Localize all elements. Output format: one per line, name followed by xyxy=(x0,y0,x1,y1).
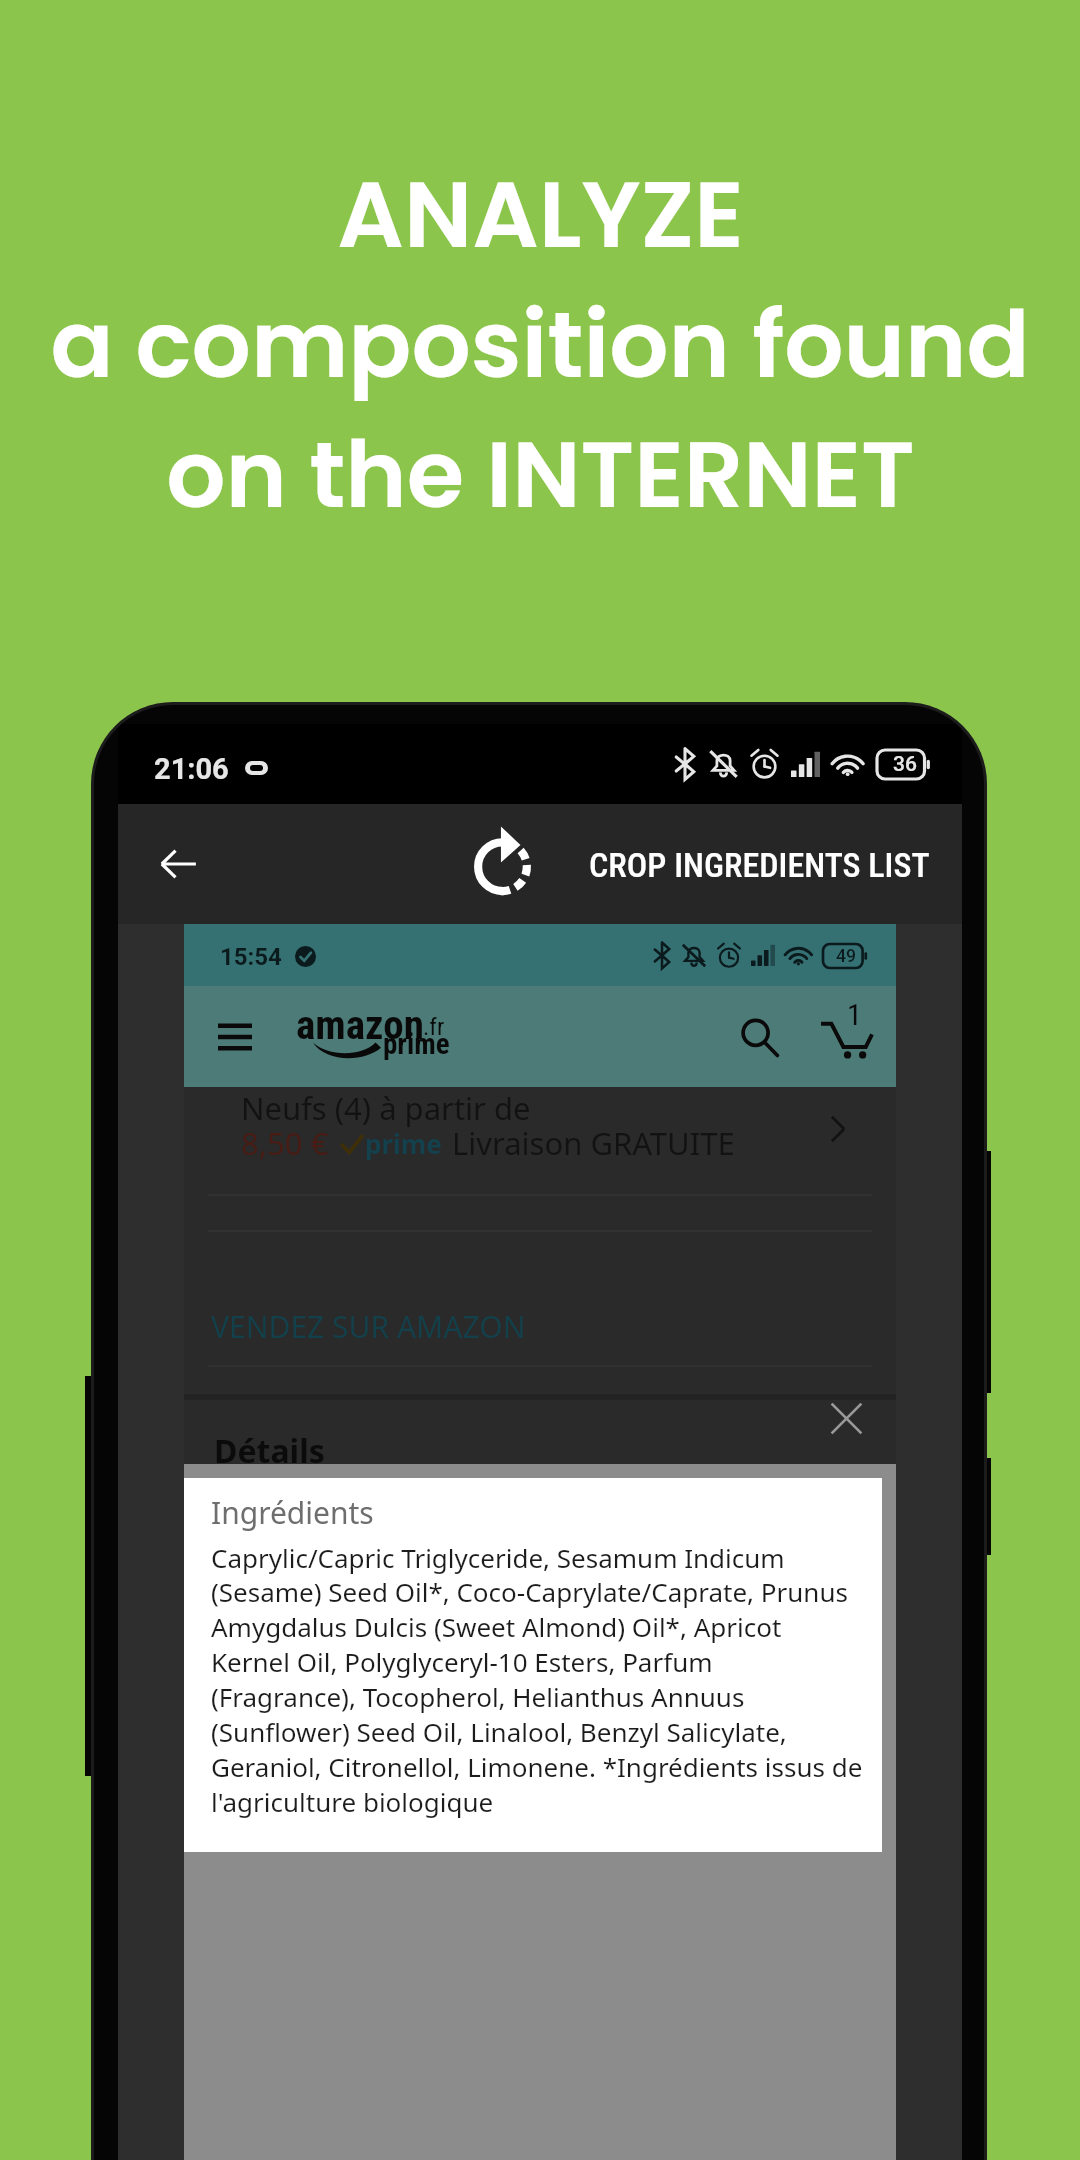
staticText: 15:54 xyxy=(220,943,282,971)
staticText: .fr xyxy=(423,1013,445,1041)
staticText: 21:06 xyxy=(154,752,229,786)
staticText: 8,50 € xyxy=(241,1122,329,1164)
button[interactable]: Rotate xyxy=(462,824,542,904)
staticText: 1 xyxy=(847,997,862,1032)
button[interactable]: Back xyxy=(140,826,216,902)
staticText: prime xyxy=(365,1126,442,1161)
staticText: Neufs (4) à partir de xyxy=(241,1087,531,1129)
staticText: 49 xyxy=(836,946,857,967)
button[interactable]: Close xyxy=(808,1380,884,1456)
staticText: ANALYZE xyxy=(337,149,744,279)
staticText: amazon xyxy=(296,1001,424,1049)
staticText: Caprylic/Capric Triglyceride, Sesamum In… xyxy=(211,1540,876,1820)
staticText: VENDEZ SUR AMAZON xyxy=(211,1306,526,1347)
staticText: prime xyxy=(383,1027,450,1061)
staticText: Détails xyxy=(214,1429,325,1473)
staticText: CROP INGREDIENTS LIST xyxy=(589,845,930,885)
staticText: Livraison GRATUITE xyxy=(452,1122,735,1164)
staticText: 36 xyxy=(893,752,917,777)
staticText: a composition found xyxy=(50,279,1030,409)
staticText: Ingrédients xyxy=(211,1492,374,1533)
staticText: on the INTERNET xyxy=(166,409,915,539)
